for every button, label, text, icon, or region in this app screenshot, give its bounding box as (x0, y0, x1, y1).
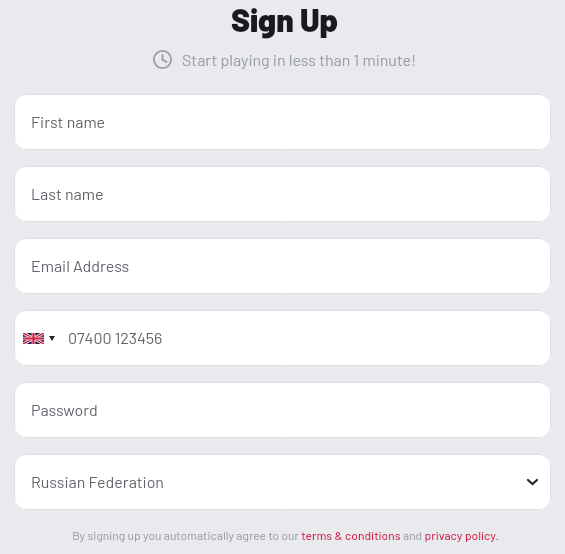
button[interactable]: First name (14, 94, 551, 150)
button[interactable]: Russian Federation (14, 454, 551, 510)
staticText: Email Address (31, 256, 130, 275)
staticText: 07400 123456 (68, 328, 163, 347)
button[interactable]: Select country code (23, 327, 55, 350)
staticText: Sign Up (231, 0, 338, 38)
staticText: Russian Federation (31, 472, 164, 491)
button[interactable]: Last name (14, 166, 551, 222)
staticText: By signing up you automatically agree to… (72, 528, 499, 542)
staticText: Password (31, 400, 98, 419)
button[interactable]: Password (14, 382, 551, 438)
button[interactable]: Select country code (14, 310, 551, 366)
button[interactable]: Email Address (14, 238, 551, 294)
staticText: Start playing in less than 1 minute! (182, 50, 417, 69)
staticText: First name (31, 112, 106, 131)
staticText: Last name (31, 184, 104, 203)
